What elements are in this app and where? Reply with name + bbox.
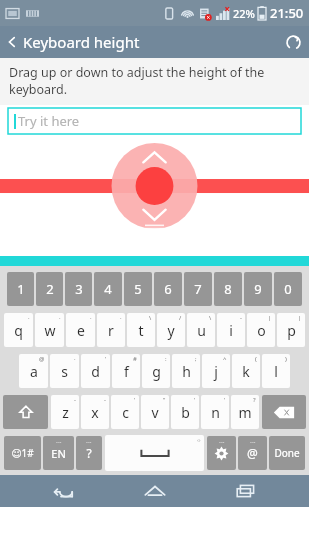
button[interactable]: · — [66, 313, 95, 347]
staticText: ? — [86, 445, 92, 461]
staticText: q — [14, 321, 23, 340]
button[interactable]: : — [142, 354, 170, 388]
button[interactable]: Home — [126, 475, 184, 507]
button[interactable]: - — [217, 313, 245, 347]
staticText: ··· — [86, 438, 92, 448]
staticText: ··· — [250, 438, 256, 448]
button[interactable]: Space — [105, 435, 204, 471]
button[interactable]: ' — [201, 395, 229, 429]
button[interactable]: " — [141, 395, 169, 429]
button[interactable]: 2 — [36, 272, 63, 306]
button[interactable]: ··· — [238, 436, 267, 470]
staticText: ) — [285, 355, 287, 363]
button[interactable]: 4 — [94, 272, 122, 306]
staticText: Keyboard height — [23, 32, 140, 52]
button[interactable]: 9 — [244, 272, 272, 306]
button[interactable]: Shift — [3, 395, 48, 429]
staticText: x — [91, 403, 99, 422]
button[interactable]: \ — [127, 313, 155, 347]
staticText: l — [274, 362, 278, 381]
staticText: j — [214, 362, 218, 381]
button[interactable]: @ — [19, 354, 48, 388]
staticText: 22% — [233, 6, 255, 21]
button[interactable]: ( — [232, 354, 260, 388]
staticText: ' — [224, 396, 226, 404]
button[interactable]: ^ — [202, 354, 230, 388]
staticText: 0 — [284, 280, 292, 298]
staticText: Try it here — [18, 112, 80, 130]
button[interactable]: ··· — [43, 436, 74, 470]
button[interactable]: - — [81, 395, 109, 429]
button[interactable]: Settings — [207, 436, 236, 470]
button[interactable]: 8 — [214, 272, 242, 306]
button[interactable]: Drag to adjust keyboard height — [0, 142, 309, 266]
button[interactable]: 1 — [7, 272, 34, 306]
staticText: w — [44, 321, 56, 340]
staticText: o — [257, 321, 266, 340]
staticText: / — [179, 314, 182, 322]
button[interactable]: Recent apps — [217, 475, 275, 507]
button[interactable]: ☺1# — [4, 436, 41, 470]
button[interactable]: · — [97, 313, 125, 347]
staticText: # — [133, 355, 137, 363]
staticText: Done — [274, 446, 300, 460]
staticText: ··· — [219, 438, 225, 448]
button[interactable]: Backspace — [262, 395, 306, 429]
staticText: i — [229, 321, 233, 340]
staticText: ? — [253, 396, 256, 404]
staticText: " — [163, 396, 166, 404]
button[interactable]: Back — [0, 26, 309, 58]
button[interactable]: Try it here — [8, 108, 301, 134]
staticText: | — [298, 314, 302, 322]
staticText: v — [151, 403, 159, 422]
staticText: - — [74, 396, 76, 404]
button[interactable]: | — [247, 313, 275, 347]
staticText: \ — [209, 314, 212, 322]
staticText: n — [211, 403, 220, 422]
staticText: · — [59, 314, 61, 322]
button[interactable]: ' — [111, 395, 139, 429]
staticText: 5 — [134, 280, 142, 298]
button[interactable]: - — [51, 395, 79, 429]
button[interactable]: \ — [187, 313, 215, 347]
button[interactable]: ; — [172, 354, 200, 388]
staticText: 7 — [194, 280, 202, 298]
staticText: ' — [194, 396, 196, 404]
button[interactable]: ··· — [76, 436, 102, 470]
button[interactable]: / — [157, 313, 185, 347]
staticText: 1 — [17, 280, 25, 298]
staticText: d — [91, 362, 100, 381]
staticText: - — [104, 396, 106, 404]
staticText: 2 — [46, 280, 54, 298]
button[interactable]: Reset — [277, 26, 309, 58]
staticText: e — [77, 321, 85, 340]
button[interactable]: 6 — [154, 272, 182, 306]
staticText: \ — [149, 314, 152, 322]
button[interactable]: 3 — [65, 272, 92, 306]
staticText: f — [124, 362, 129, 381]
staticText: : — [165, 355, 167, 363]
button[interactable]: Back — [34, 475, 92, 507]
button[interactable]: ? — [231, 395, 259, 429]
button[interactable]: Done — [269, 436, 305, 470]
button[interactable]: # — [112, 354, 140, 388]
staticText: - — [240, 314, 242, 322]
button[interactable]: 0 — [274, 272, 302, 306]
button[interactable]: 5 — [124, 272, 152, 306]
button[interactable]: · — [50, 354, 79, 388]
staticText: u — [197, 321, 206, 340]
staticText: p — [287, 321, 296, 340]
button[interactable]: ' — [81, 354, 110, 388]
button[interactable]: 7 — [184, 272, 212, 306]
button[interactable]: | — [277, 313, 305, 347]
button[interactable]: ) — [262, 354, 290, 388]
staticText: 9 — [254, 280, 262, 298]
staticText: y — [167, 321, 175, 340]
staticText: t — [138, 321, 144, 340]
button[interactable]: · — [35, 313, 64, 347]
staticText: 3 — [75, 280, 83, 298]
staticText: ‹› — [197, 436, 201, 444]
staticText: @ — [247, 445, 258, 461]
button[interactable]: · — [4, 313, 33, 347]
button[interactable]: ' — [171, 395, 199, 429]
